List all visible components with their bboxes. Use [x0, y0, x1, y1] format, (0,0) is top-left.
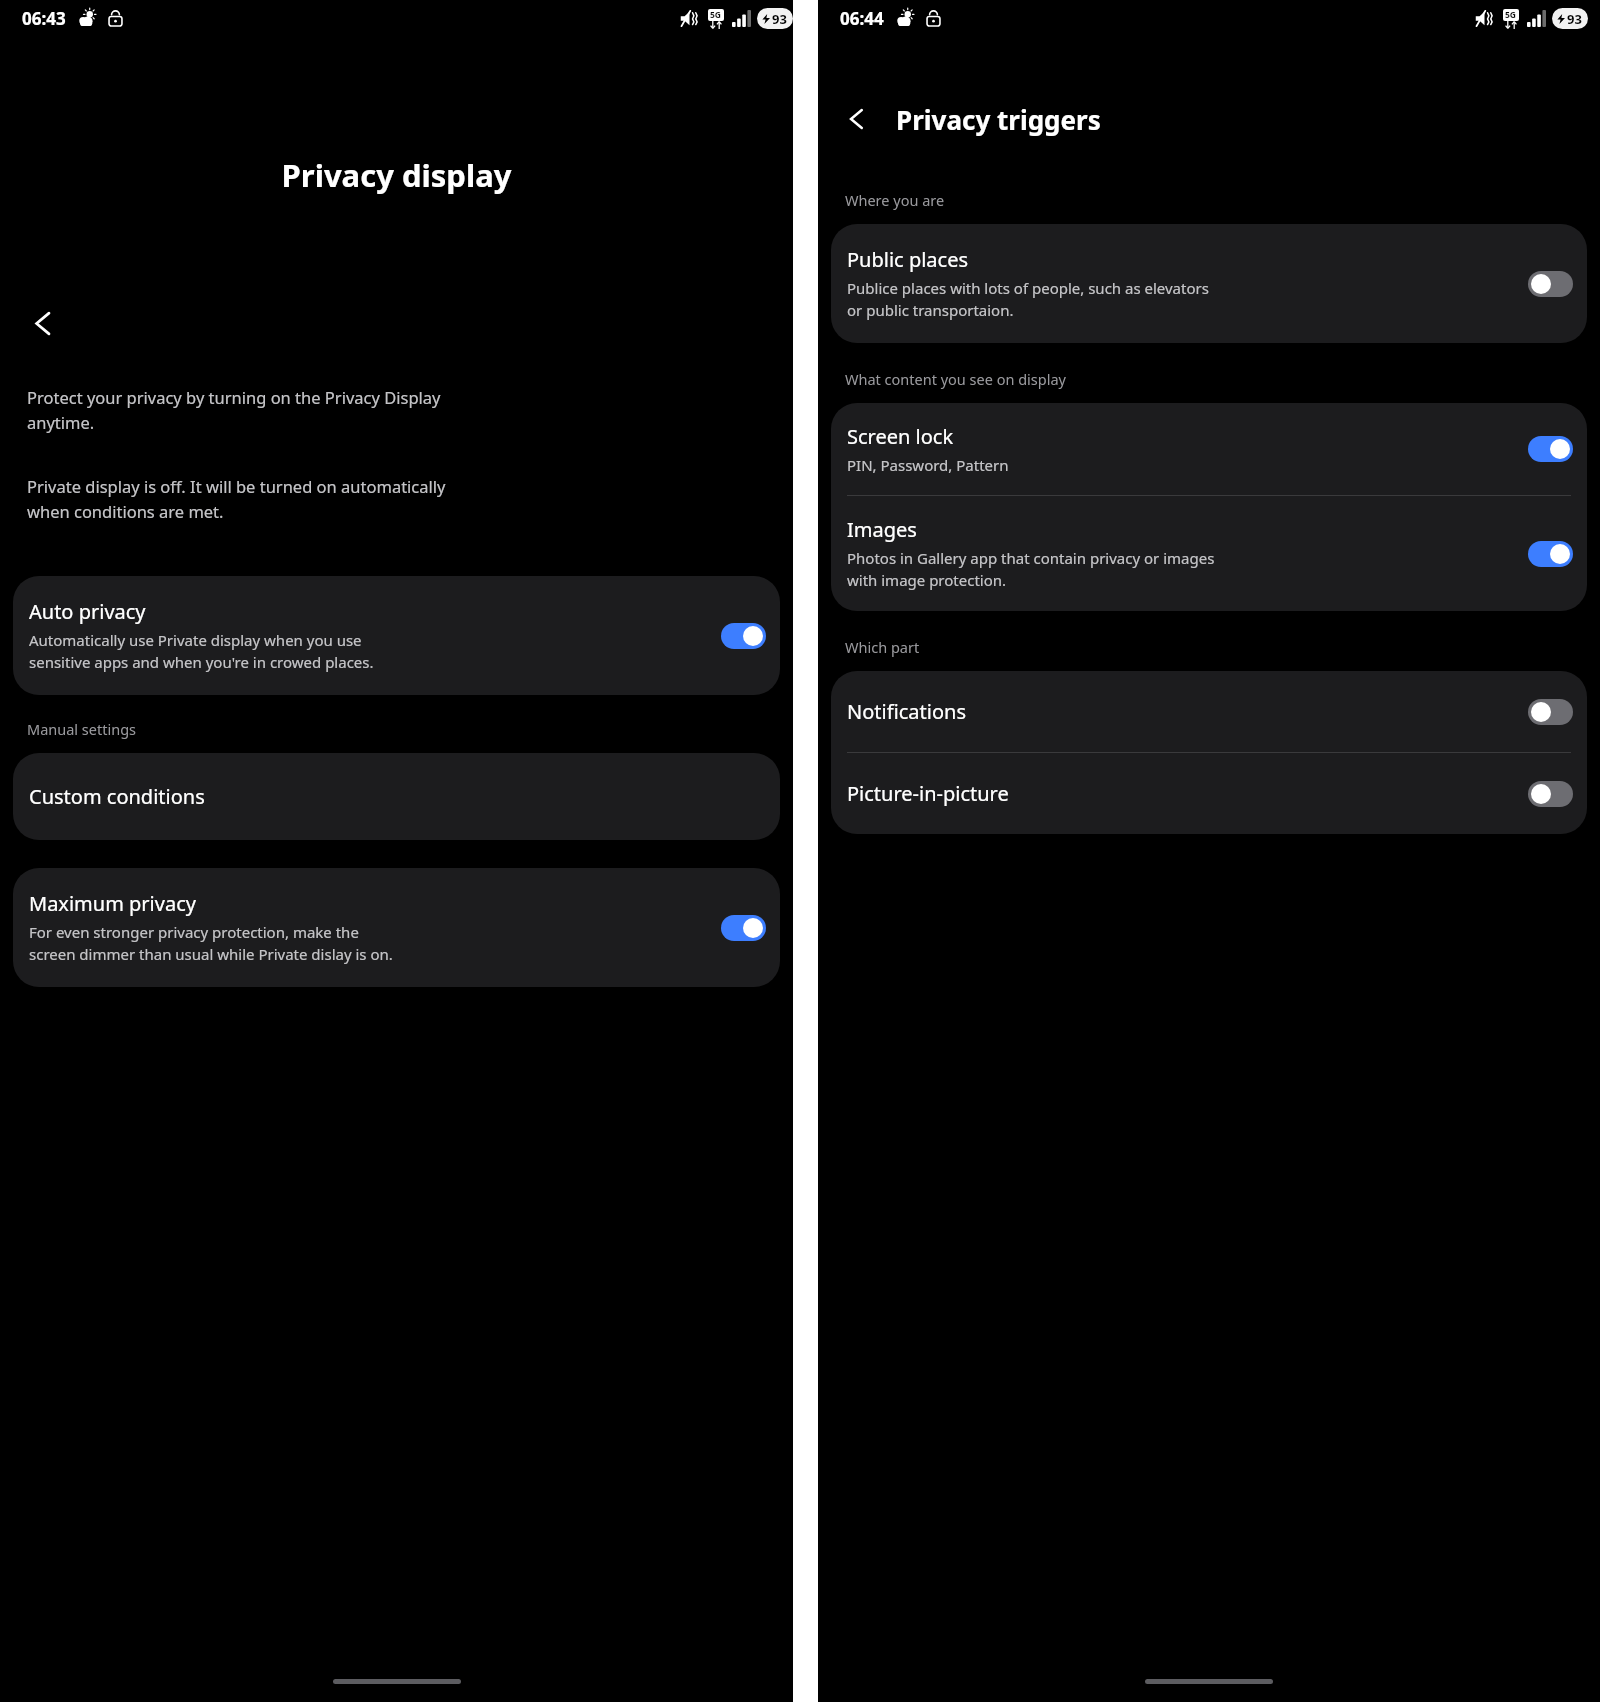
staticText: Custom conditions	[29, 783, 205, 810]
staticText: 06:44	[840, 7, 884, 30]
staticText: Manual settings	[27, 719, 137, 739]
staticText: Images	[847, 516, 917, 543]
button[interactable]: Images	[831, 496, 1587, 611]
button[interactable]: On	[1528, 541, 1573, 567]
staticText: Privacy triggers	[896, 102, 1101, 137]
button[interactable]: Custom conditions	[13, 753, 780, 840]
staticText: For even stronger privacy protection, ma…	[29, 922, 393, 965]
button[interactable]: Notifications	[831, 671, 1587, 752]
button[interactable]: On	[721, 915, 766, 941]
staticText: Screen lock	[847, 423, 954, 450]
staticText: Maximum privacy	[29, 890, 196, 917]
staticText: PIN, Password, Pattern	[847, 455, 1009, 475]
staticText: Notifications	[847, 698, 966, 725]
staticText: What content you see on display	[845, 369, 1066, 389]
staticText: Picture-in-picture	[847, 780, 1009, 807]
button[interactable]: Picture-in-picture	[831, 753, 1587, 834]
staticText: 5G	[710, 9, 722, 21]
button[interactable]: Off	[1528, 699, 1573, 725]
staticText: 93	[1567, 10, 1582, 28]
staticText: 5G	[1505, 9, 1517, 21]
button[interactable]: Maximum privacy	[13, 868, 780, 987]
staticText: Private display is off. It will be turne…	[27, 475, 446, 522]
staticText: Protect your privacy by turning on the P…	[27, 386, 441, 433]
button[interactable]: Off	[1528, 271, 1573, 297]
staticText: Where you are	[845, 190, 945, 210]
staticText: 93	[772, 10, 787, 28]
staticText: 06:43	[22, 7, 66, 30]
button[interactable]: Back	[830, 92, 884, 146]
staticText: Photos in Gallery app that contain priva…	[847, 548, 1215, 591]
staticText: Privacy display	[0, 154, 793, 196]
staticText: Public places	[847, 246, 969, 273]
button[interactable]: Back	[16, 296, 70, 350]
button[interactable]: On	[721, 623, 766, 649]
staticText: Automatically use Private display when y…	[29, 630, 374, 673]
button[interactable]: Off	[1528, 781, 1573, 807]
staticText: Publice places with lots of people, such…	[847, 278, 1209, 321]
staticText: Which part	[845, 637, 920, 657]
button[interactable]: Auto privacy	[13, 576, 780, 695]
button[interactable]: On	[1528, 436, 1573, 462]
staticText: Auto privacy	[29, 598, 146, 625]
button[interactable]: Public places	[831, 224, 1587, 343]
button[interactable]: Screen lock	[831, 403, 1587, 495]
